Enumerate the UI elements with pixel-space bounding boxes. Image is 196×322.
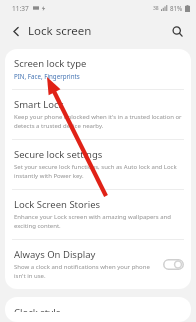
staticText: Always On Display xyxy=(14,248,96,261)
staticText: Clock style xyxy=(14,306,61,312)
staticText: Keep your phone unlocked when it's in a … xyxy=(14,113,182,130)
staticText: 38 xyxy=(153,5,159,12)
staticText: Lock screen xyxy=(28,23,92,39)
staticText: Set your secure lock functions, such as … xyxy=(14,163,182,180)
staticText: 11:37 xyxy=(12,4,29,13)
staticText: Show a clock and notifications when your… xyxy=(14,263,157,280)
button[interactable]: Clock style xyxy=(5,297,191,322)
button[interactable]: Back xyxy=(6,21,26,41)
button[interactable]: Lock Screen Stories xyxy=(5,190,191,239)
button[interactable]: Search xyxy=(166,20,188,42)
staticText: 81% xyxy=(170,4,183,12)
button[interactable]: Secure lock settings xyxy=(5,140,191,189)
button[interactable]: Screen lock type xyxy=(5,49,191,89)
staticText: Lock Screen Stories xyxy=(14,198,101,211)
staticText: Enhance your Lock screen with amazing wa… xyxy=(14,213,182,230)
staticText: Screen lock type xyxy=(14,57,87,70)
button[interactable]: Always On Display xyxy=(5,240,191,289)
button[interactable]: Smart Lock xyxy=(5,90,191,139)
staticText: Secure lock settings xyxy=(14,148,103,161)
button[interactable]: Always On Display toggle xyxy=(161,256,185,272)
staticText: PIN, Face, Fingerprints xyxy=(14,72,80,80)
staticText: Smart Lock xyxy=(14,98,64,111)
